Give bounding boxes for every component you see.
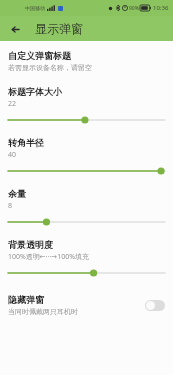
staticText: 标题字体大小 xyxy=(8,86,62,97)
staticText: 中国移动 xyxy=(25,5,45,11)
staticText: 90% xyxy=(129,5,139,12)
staticText: 40 xyxy=(8,150,17,160)
staticText: 显示弹窗 xyxy=(35,21,83,36)
button[interactable]: 转角半径 xyxy=(0,137,173,176)
button[interactable]: 背景透明度 xyxy=(0,239,173,278)
staticText: 隐藏弹窗 xyxy=(8,294,44,305)
staticText: 当同时佩戴两只耳机时 xyxy=(8,307,78,316)
staticText: 10:36 xyxy=(153,4,169,12)
staticText: 背景透明度 xyxy=(8,239,53,250)
staticText: 8 xyxy=(8,201,13,211)
button[interactable]: 隐藏弹窗 xyxy=(0,292,173,318)
staticText: 22 xyxy=(8,99,17,109)
button[interactable]: Back xyxy=(5,19,25,39)
button[interactable]: 余量 xyxy=(0,188,173,227)
staticText: 转角半径 xyxy=(8,137,44,148)
staticText: 100%透明←···→100%填充 xyxy=(8,252,90,262)
button[interactable]: 自定义弹窗标题 xyxy=(0,48,173,74)
staticText: 若需显示设备名称，请留空 xyxy=(8,63,92,72)
staticText: 余量 xyxy=(8,188,26,199)
button[interactable]: 标题字体大小 xyxy=(0,86,173,125)
staticText: 自定义弹窗标题 xyxy=(8,50,71,61)
button[interactable]: 隐藏弹窗 toggle xyxy=(145,300,165,311)
